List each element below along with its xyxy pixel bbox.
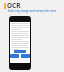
button[interactable] — [10, 54, 19, 58]
button[interactable]: OCR — [4, 1, 21, 10]
button[interactable] — [21, 54, 30, 58]
staticText: OCR — [7, 1, 21, 10]
staticText: Scan any image and extract the text — [0, 9, 64, 13]
button[interactable] — [14, 50, 26, 53]
